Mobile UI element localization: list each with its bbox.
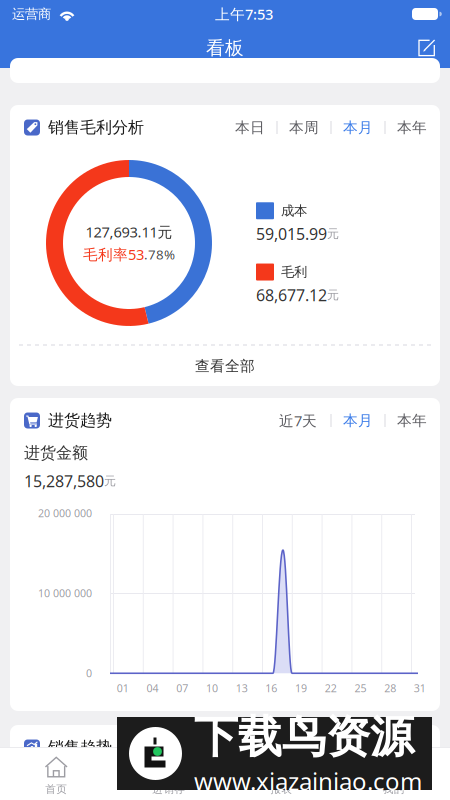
staticText: 19	[295, 681, 307, 695]
staticText: 元	[327, 288, 339, 302]
staticText: 13	[236, 681, 248, 695]
staticText: 04	[146, 681, 158, 695]
staticText: 10 000 000	[38, 586, 92, 600]
button[interactable]: 进销存	[112, 748, 225, 800]
staticText: 本日	[235, 118, 265, 136]
staticText: 销售毛利分析	[48, 118, 144, 137]
button[interactable]: 本日	[234, 115, 266, 139]
button[interactable]: 本月	[342, 408, 374, 432]
staticText: 毛利	[281, 264, 307, 280]
staticText: 我的	[383, 783, 405, 796]
staticText: 本周	[289, 118, 319, 136]
staticText: 元	[327, 226, 339, 241]
button[interactable]: 编辑	[404, 30, 450, 66]
staticText: 16	[265, 681, 277, 695]
staticText: 报表	[270, 783, 292, 796]
staticText: 31	[414, 681, 426, 695]
staticText: .78%	[144, 245, 175, 263]
staticText: 进销存	[152, 783, 185, 796]
staticText: 10	[206, 681, 218, 695]
staticText: 28	[384, 681, 396, 695]
button[interactable]: 本年	[396, 115, 428, 139]
button[interactable]: 本年	[396, 408, 428, 432]
button[interactable]: 报表	[225, 748, 337, 800]
staticText: 68,677.12	[256, 284, 327, 306]
button[interactable]: 查看全部	[10, 346, 440, 386]
staticText: 0	[86, 666, 92, 680]
staticText: 看板	[206, 36, 244, 59]
staticText: 本年	[397, 118, 427, 136]
staticText: 59,015.99	[256, 223, 327, 244]
staticText: 15,287,580	[24, 470, 104, 492]
button[interactable]: 首页	[0, 748, 112, 800]
staticText: 毛利率53	[83, 244, 144, 264]
staticText: 进货趋势	[48, 411, 112, 430]
staticText: 01	[117, 681, 129, 695]
staticText: www.xiazainiao.com	[194, 765, 422, 797]
staticText: 07	[176, 681, 188, 695]
staticText: 本月	[343, 411, 373, 429]
staticText: 下载鸟资源	[194, 710, 414, 764]
button[interactable]: 本周	[288, 115, 320, 139]
staticText: 127,693.11元	[85, 222, 172, 241]
staticText: 本年	[397, 411, 427, 429]
staticText: 22	[325, 681, 337, 695]
staticText: 本月	[343, 118, 373, 136]
staticText: 进货金额	[24, 443, 88, 463]
staticText: 元	[104, 474, 116, 488]
button[interactable]: 近7天	[276, 408, 320, 432]
button[interactable]: 我的	[337, 748, 450, 800]
staticText: 查看全部	[195, 357, 255, 375]
staticText: 近7天	[279, 411, 317, 430]
staticText: 上午7:53	[215, 4, 273, 24]
staticText: 25	[354, 681, 366, 695]
staticText: 首页	[45, 783, 67, 796]
staticText: 成本	[281, 203, 307, 219]
button[interactable]: 本月	[342, 115, 374, 139]
staticText: 销售趋势	[48, 738, 112, 757]
staticText: 运营商	[12, 6, 51, 22]
staticText: 20 000 000	[38, 506, 92, 520]
